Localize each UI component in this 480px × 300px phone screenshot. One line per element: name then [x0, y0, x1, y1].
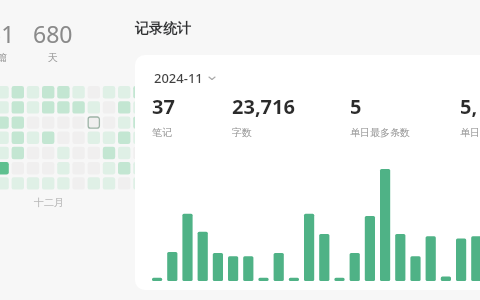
staticText: 37 [152, 93, 175, 120]
staticText: 2024-11 [154, 69, 203, 87]
staticText: 十二月 [34, 196, 64, 209]
staticText: 5 [350, 93, 362, 120]
staticText: 记录统计 [135, 20, 191, 38]
staticText: 61 [0, 18, 15, 49]
staticText: 单日最 [460, 126, 480, 139]
staticText: 5, [460, 93, 478, 120]
staticText: 单日最多条数 [350, 126, 410, 139]
staticText: 23,716 [232, 93, 295, 120]
staticText: 篇 [0, 51, 7, 64]
staticText: 680 [33, 18, 73, 49]
button[interactable]: 2024-11 [135, 55, 480, 290]
staticText: 字数 [232, 126, 252, 139]
staticText: 天 [48, 51, 58, 64]
button[interactable]: 2024-11 [152, 67, 218, 89]
staticText: 笔记 [152, 126, 172, 139]
